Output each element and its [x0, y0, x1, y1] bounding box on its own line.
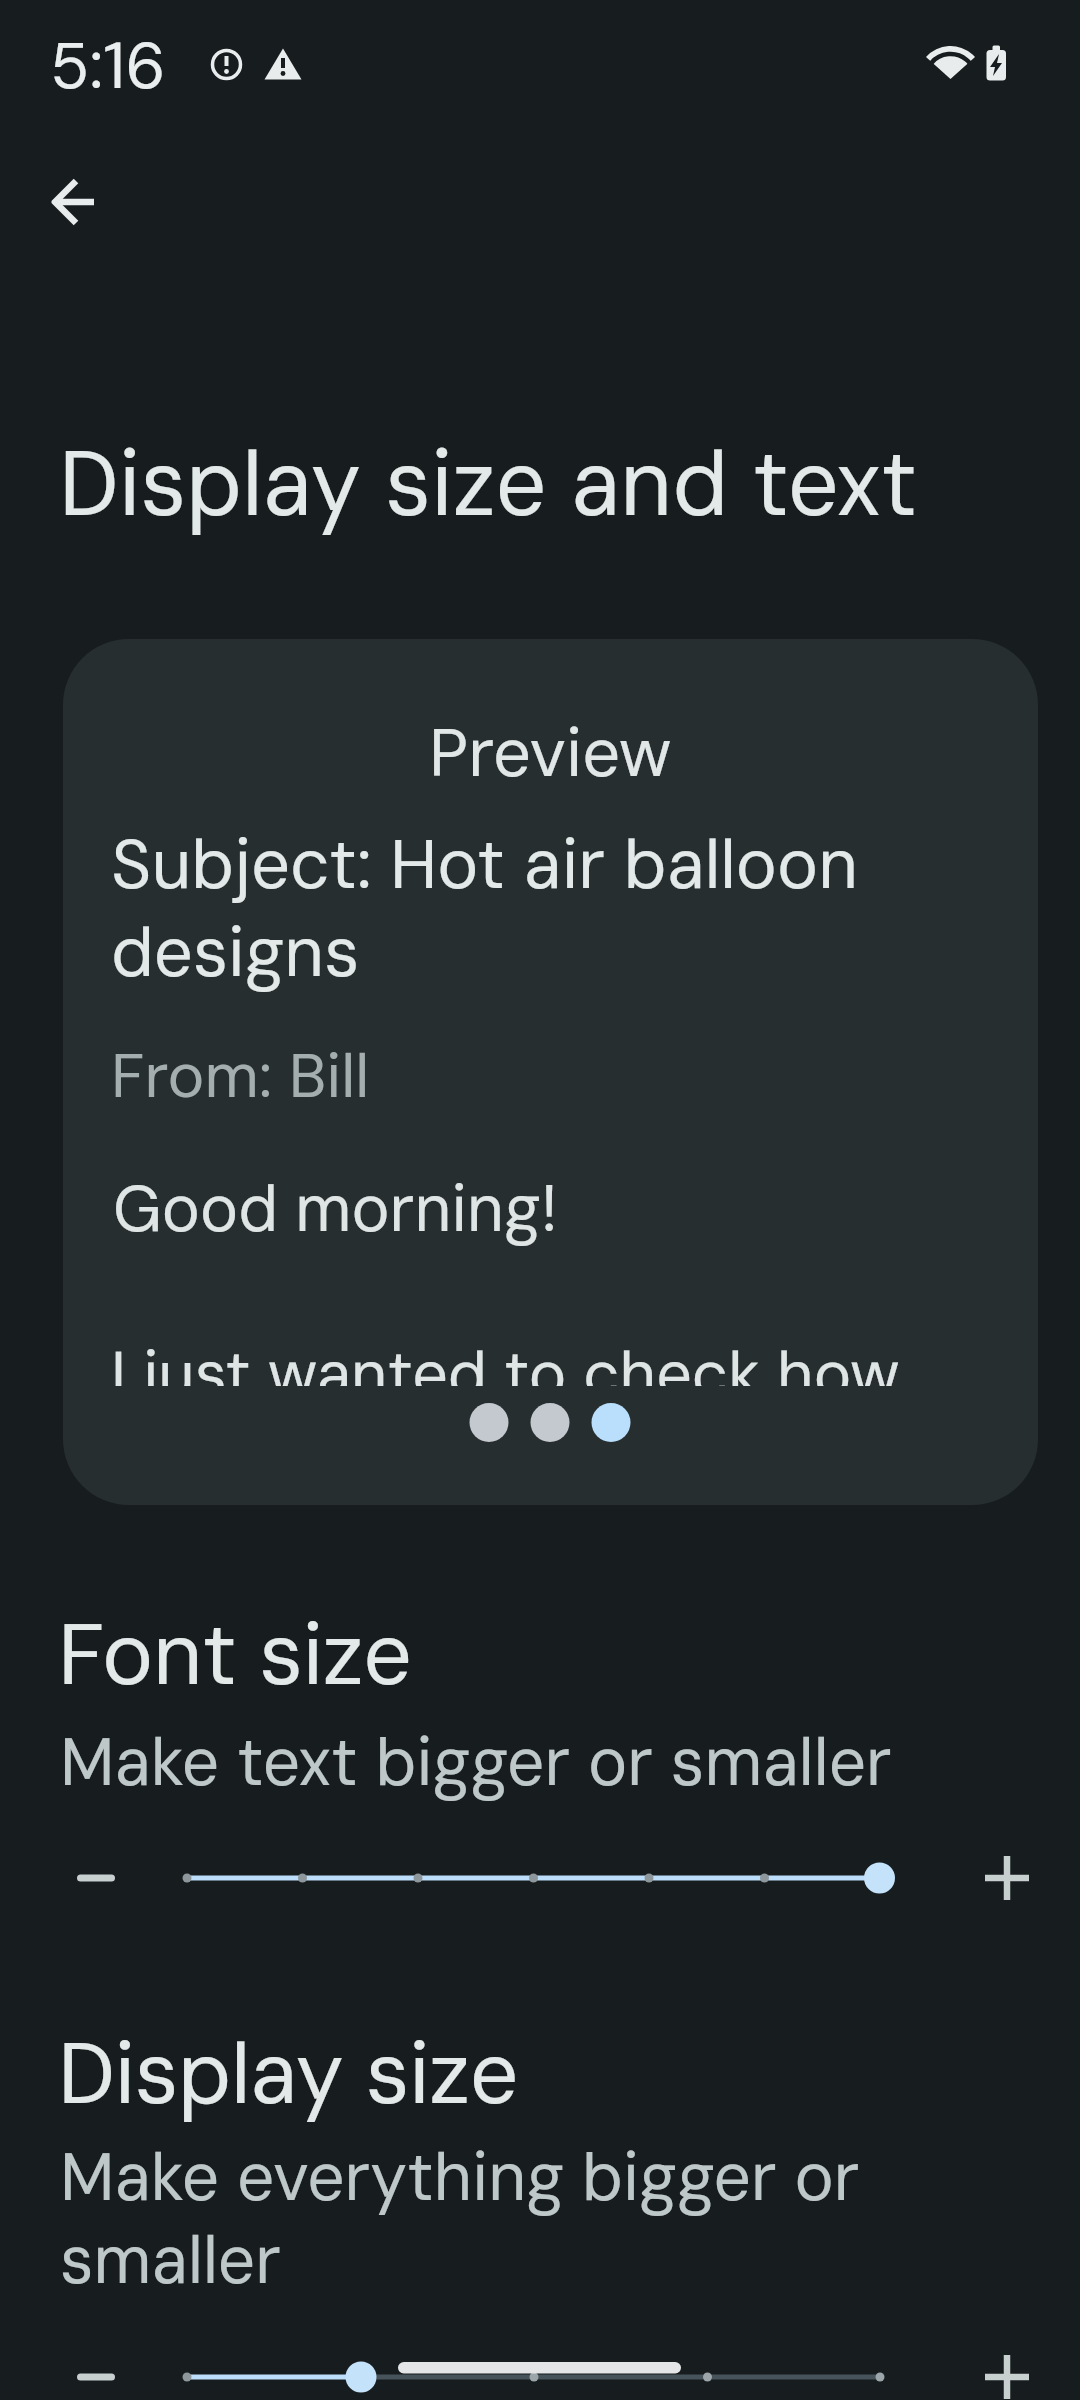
button[interactable] [54, 1836, 138, 1920]
button[interactable] [965, 1836, 1049, 1920]
staticText: Display size [58, 2018, 518, 2130]
staticText: Subject: Hot air balloon [111, 820, 859, 910]
staticText: Make everything bigger or [60, 2135, 860, 2221]
staticText: Good morning! [113, 1168, 558, 1251]
button[interactable] [965, 2335, 1049, 2400]
staticText: designs [111, 908, 360, 998]
staticText: I just wanted to check how [111, 1334, 900, 1386]
staticText: Make text bigger or smaller [60, 1720, 892, 1806]
staticText: Display size and text [59, 426, 918, 543]
button[interactable] [54, 2335, 138, 2400]
button[interactable] [160, 2345, 910, 2400]
button[interactable] [36, 164, 112, 240]
staticText: 5:16 [50, 24, 166, 109]
button[interactable] [160, 1846, 910, 1910]
staticText: From: Bill [111, 1035, 370, 1116]
staticText: smaller [60, 2218, 281, 2304]
staticText: Preview [429, 710, 672, 797]
staticText: Font size [58, 1599, 412, 1711]
